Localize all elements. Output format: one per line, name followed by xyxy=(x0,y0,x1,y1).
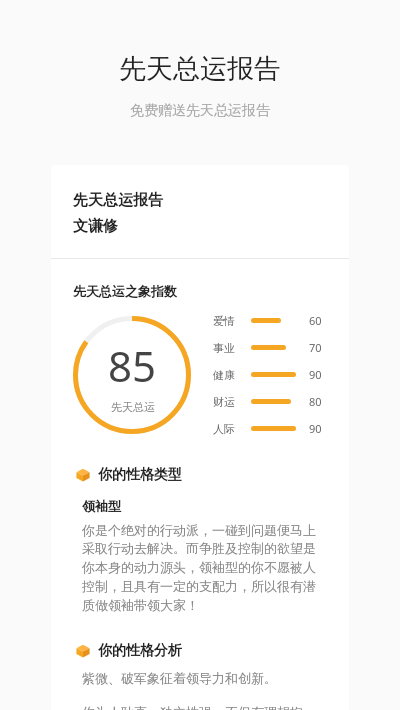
staticText: 先天总运报告 xyxy=(0,52,400,86)
staticText: 人际 xyxy=(213,422,235,436)
staticText: 爱情 xyxy=(213,314,235,328)
staticText: 你为人耿直，独立性强，不但有理想抱负，也很 xyxy=(82,704,327,710)
button[interactable]: Section marker xyxy=(76,466,327,484)
staticText: 先天总运之象指数 xyxy=(73,283,177,299)
staticText: 85 xyxy=(108,337,157,394)
staticText: 财运 xyxy=(213,395,235,409)
staticText: 你是个绝对的行动派，一碰到问题便马上采取行动去解决。而争胜及控制的欲望是你本身的… xyxy=(82,522,327,614)
staticText: 70 xyxy=(309,340,322,355)
staticText: 先天总运报告 xyxy=(73,191,163,210)
other: Section marker xyxy=(76,644,90,658)
staticText: 你的性格分析 xyxy=(98,642,182,660)
staticText: 文谦修 xyxy=(73,217,118,236)
staticText: 80 xyxy=(309,394,322,409)
staticText: 你的性格类型 xyxy=(98,466,182,484)
button[interactable]: 先天总运报告 xyxy=(51,165,349,710)
staticText: 60 xyxy=(309,313,322,328)
other: Section marker xyxy=(76,468,90,482)
staticText: 事业 xyxy=(213,341,235,355)
staticText: 90 xyxy=(309,367,322,382)
staticText: 先天总运 xyxy=(111,400,155,414)
staticText: 领袖型 xyxy=(82,498,121,514)
staticText: 健康 xyxy=(213,368,235,382)
staticText: 90 xyxy=(309,421,322,436)
button[interactable]: Section marker xyxy=(76,642,327,660)
staticText: 紫微、破军象征着领导力和创新。 xyxy=(82,670,277,686)
staticText: 免费赠送先天总运报告 xyxy=(0,102,400,120)
